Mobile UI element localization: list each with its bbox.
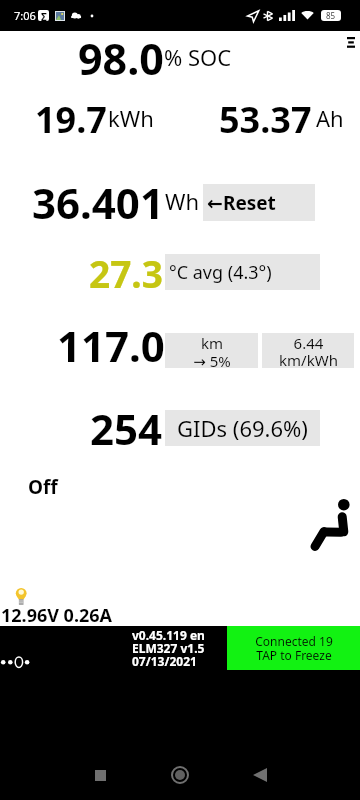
staticText: °C avg (4.3°) xyxy=(169,260,272,285)
staticText: 85 xyxy=(326,10,336,21)
staticText: 254 xyxy=(90,400,163,457)
button[interactable]: ←Reset xyxy=(203,184,315,221)
staticText: GIDs (69.6%) xyxy=(177,413,308,443)
staticText: 27.3 xyxy=(89,248,163,298)
staticText: km → 5% xyxy=(193,333,231,368)
staticText: v0.45.119 en ELM327 v1.5 07/13/2021 xyxy=(132,627,205,670)
staticText: 19.7 xyxy=(35,95,107,144)
staticText: 7:06 xyxy=(14,8,36,23)
staticText: Connected 19 TAP to Freeze xyxy=(255,633,333,664)
button[interactable]: More options xyxy=(339,30,360,54)
staticText: Wh xyxy=(165,186,200,216)
staticText: 36.401 xyxy=(32,174,164,231)
staticText: 98.0 xyxy=(78,29,164,88)
button[interactable]: Back xyxy=(236,753,284,797)
staticText: Off xyxy=(28,474,58,500)
staticText: 6.44 km/kWh xyxy=(279,333,338,368)
button[interactable]: Connected 19 TAP to Freeze xyxy=(227,626,360,670)
staticText: kWh xyxy=(108,103,154,133)
staticText: Σ xyxy=(41,10,47,21)
staticText: % SOC xyxy=(164,42,232,72)
staticText: 117.0 xyxy=(57,317,165,374)
button[interactable]: Recents xyxy=(76,753,124,797)
staticText: 12.96V 0.26A xyxy=(1,603,113,628)
staticText: 53.37 xyxy=(219,95,312,144)
staticText: Ah xyxy=(316,103,344,133)
button[interactable]: Home xyxy=(156,753,204,797)
staticText: ←Reset xyxy=(207,190,276,216)
